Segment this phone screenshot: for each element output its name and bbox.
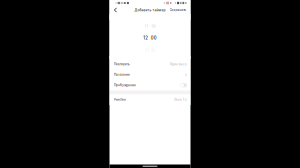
button[interactable]: Название [109,69,190,80]
button[interactable]: Назад [111,6,120,14]
button[interactable]: Рингтон [109,94,190,105]
button[interactable]: Пробуждение [109,80,190,90]
staticText: Звук 1 [174,98,184,101]
staticText: Пробуждение [114,83,136,87]
staticText: Добавить таймер [134,8,165,12]
staticText: 13 [145,48,149,52]
staticText: Рингтон [114,98,126,102]
staticText: Один раз [170,63,184,66]
staticText: 11 [145,24,149,28]
staticText: 59 [151,24,155,28]
button[interactable]: Сохранить [168,6,187,14]
staticText: 12 [143,35,148,41]
staticText: Название [114,73,130,77]
staticText: 01 [151,48,155,52]
staticText: 00 [151,35,157,41]
staticText: Сохранить [169,8,186,12]
staticText: Повторять [114,62,130,66]
button[interactable]: Повторять [109,59,190,69]
